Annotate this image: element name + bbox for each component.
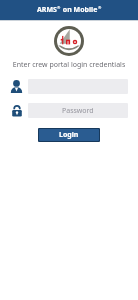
staticText: on Mobile — [61, 5, 98, 15]
staticText: ® — [57, 5, 61, 10]
button[interactable]: Password — [28, 103, 128, 118]
staticText: Enter crew portal login credentials — [0, 60, 138, 70]
other: User — [9, 79, 24, 94]
staticText: ARMS — [37, 5, 57, 15]
staticText: ® — [98, 5, 102, 10]
staticText: Password — [62, 106, 94, 116]
staticText: Login — [59, 130, 79, 140]
other: Password — [9, 103, 24, 118]
button[interactable]: Login — [39, 129, 99, 141]
